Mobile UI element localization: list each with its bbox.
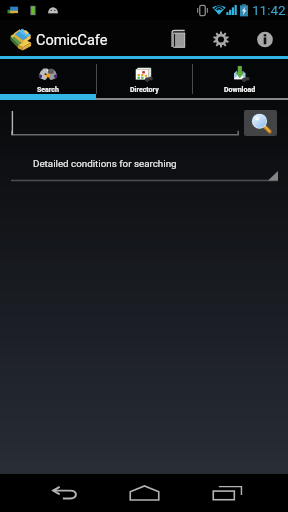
staticText: ComicCafe <box>36 32 108 49</box>
button[interactable]: Back <box>24 474 104 512</box>
button[interactable]: Recents <box>187 474 267 512</box>
staticText: Download <box>224 86 256 94</box>
button[interactable]: Library <box>155 20 199 56</box>
staticText: Search <box>37 86 59 94</box>
button[interactable]: Directory <box>96 59 192 100</box>
button[interactable] <box>11 110 239 136</box>
button[interactable]: Download <box>192 59 288 100</box>
staticText: Directory <box>130 86 159 94</box>
button[interactable]: Home <box>104 474 184 512</box>
staticText: 11:42 <box>252 2 286 18</box>
button[interactable]: Detailed conditions for searching <box>11 156 278 181</box>
button[interactable]: Search <box>0 59 96 100</box>
button[interactable]: Settings <box>199 20 243 56</box>
staticText: Detailed conditions for searching <box>33 158 177 169</box>
button[interactable]: Info <box>243 20 287 56</box>
button[interactable]: Search <box>244 110 277 136</box>
